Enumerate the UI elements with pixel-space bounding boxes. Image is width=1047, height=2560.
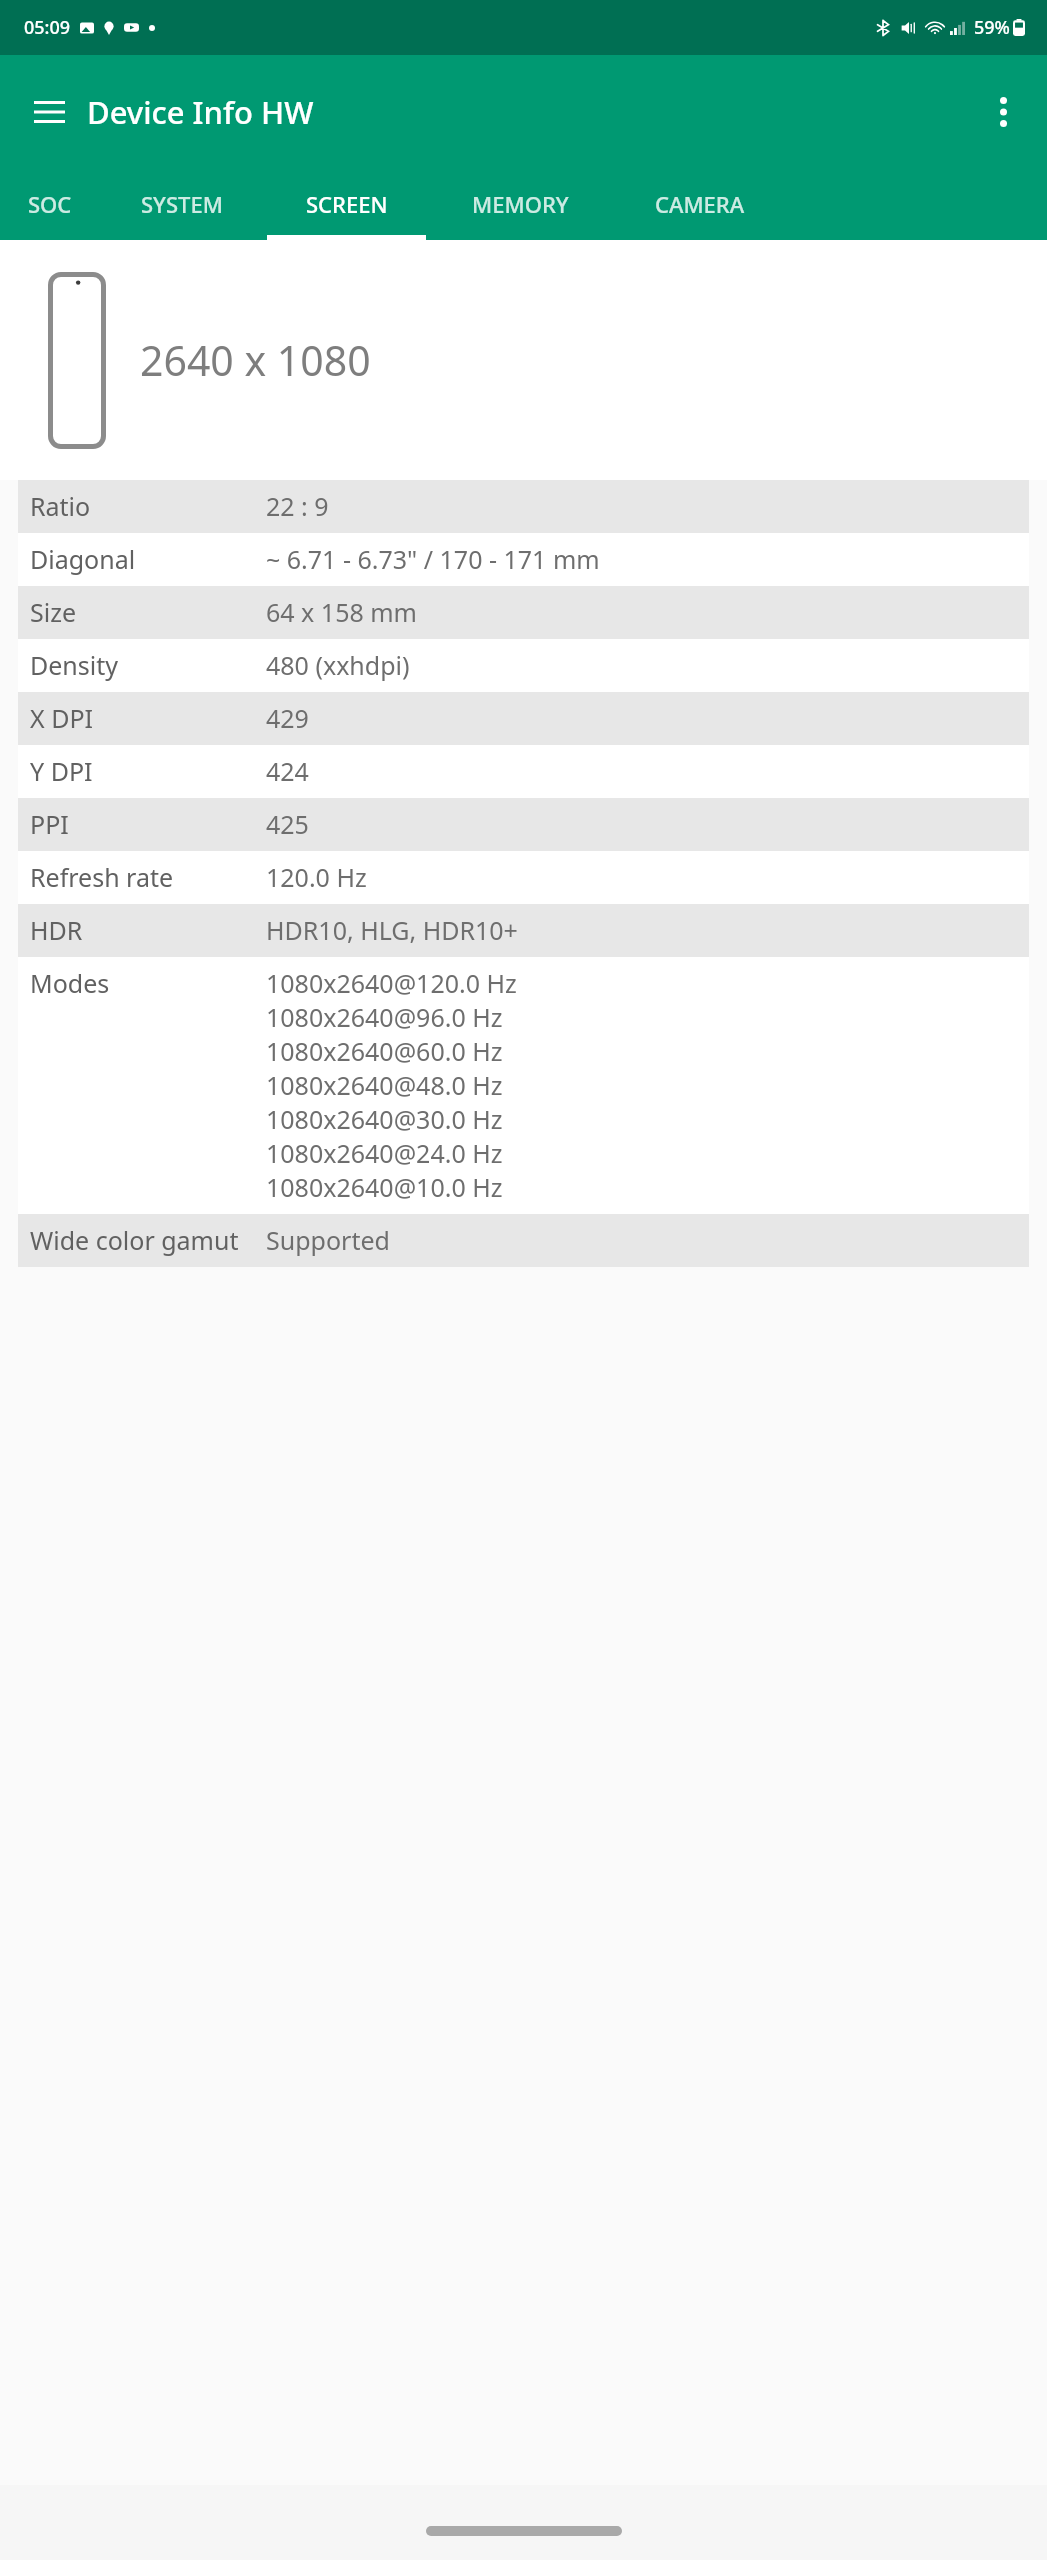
staticText: SOC — [28, 189, 72, 219]
staticText: Supported — [266, 1223, 390, 1257]
staticText: 1080x2640@24.0 Hz — [266, 1136, 503, 1170]
staticText: Modes — [30, 966, 266, 1000]
button[interactable]: CAMERA — [610, 168, 790, 240]
button[interactable]: PPI — [18, 798, 1029, 851]
button[interactable]: Home gesture handle — [426, 2526, 622, 2536]
staticText: SCREEN — [306, 189, 388, 219]
staticText: Device Info HW — [87, 91, 314, 133]
button[interactable]: Density — [18, 639, 1029, 692]
staticText: 480 (xxhdpi) — [266, 648, 410, 682]
staticText: 425 — [266, 807, 309, 841]
staticText: 1080x2640@10.0 Hz — [266, 1170, 503, 1204]
staticText: Ratio — [30, 489, 266, 523]
staticText: 424 — [266, 754, 309, 788]
staticText: 1080x2640@96.0 Hz — [266, 1000, 503, 1034]
staticText: HDR — [30, 913, 266, 947]
staticText: 1080x2640@120.0 Hz — [266, 966, 517, 1000]
button[interactable]: Size — [18, 586, 1029, 639]
button[interactable]: HDR — [18, 904, 1029, 957]
staticText: HDR10, HLG, HDR10+ — [266, 913, 518, 947]
button[interactable]: MEMORY — [430, 168, 610, 240]
staticText: Y DPI — [30, 754, 266, 788]
staticText: Refresh rate — [30, 860, 266, 894]
button[interactable]: Modes — [18, 957, 1029, 1214]
staticText: 1080x2640@30.0 Hz — [266, 1102, 503, 1136]
button[interactable]: Y DPI — [18, 745, 1029, 798]
staticText: X DPI — [30, 701, 266, 735]
button[interactable]: Wide color gamut — [18, 1214, 1029, 1267]
staticText: Wide color gamut — [30, 1223, 266, 1257]
button[interactable]: More options — [973, 82, 1033, 142]
staticText: 1080x2640@48.0 Hz — [266, 1068, 503, 1102]
staticText: Density — [30, 648, 266, 682]
staticText: CAMERA — [655, 189, 745, 219]
button[interactable]: Diagonal — [18, 533, 1029, 586]
staticText: 120.0 Hz — [266, 860, 367, 894]
staticText: 22 : 9 — [266, 489, 329, 523]
button[interactable]: SCREEN — [263, 168, 430, 240]
button[interactable]: SOC — [0, 168, 100, 240]
staticText: 59% — [974, 15, 1010, 40]
staticText: PPI — [30, 807, 266, 841]
staticText: 1080x2640@60.0 Hz — [266, 1034, 503, 1068]
button[interactable]: Open navigation drawer — [19, 82, 79, 142]
staticText: SYSTEM — [141, 189, 223, 219]
staticText: 64 x 158 mm — [266, 595, 417, 629]
staticText: 2640 x 1080 — [140, 332, 371, 388]
staticText: Diagonal — [30, 542, 266, 576]
button[interactable]: Ratio — [18, 480, 1029, 533]
staticText: Size — [30, 595, 266, 629]
staticText: 429 — [266, 701, 309, 735]
staticText: 05:09 — [24, 15, 71, 40]
button[interactable]: Refresh rate — [18, 851, 1029, 904]
button[interactable]: X DPI — [18, 692, 1029, 745]
staticText: MEMORY — [472, 189, 569, 219]
staticText: ~ 6.71 - 6.73" / 170 - 171 mm — [266, 542, 600, 576]
button[interactable]: SYSTEM — [100, 168, 263, 240]
